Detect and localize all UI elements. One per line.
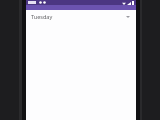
other: Select day [125, 14, 131, 20]
button[interactable]: Tuesday [26, 10, 136, 23]
staticText: Tuesday [31, 13, 125, 20]
